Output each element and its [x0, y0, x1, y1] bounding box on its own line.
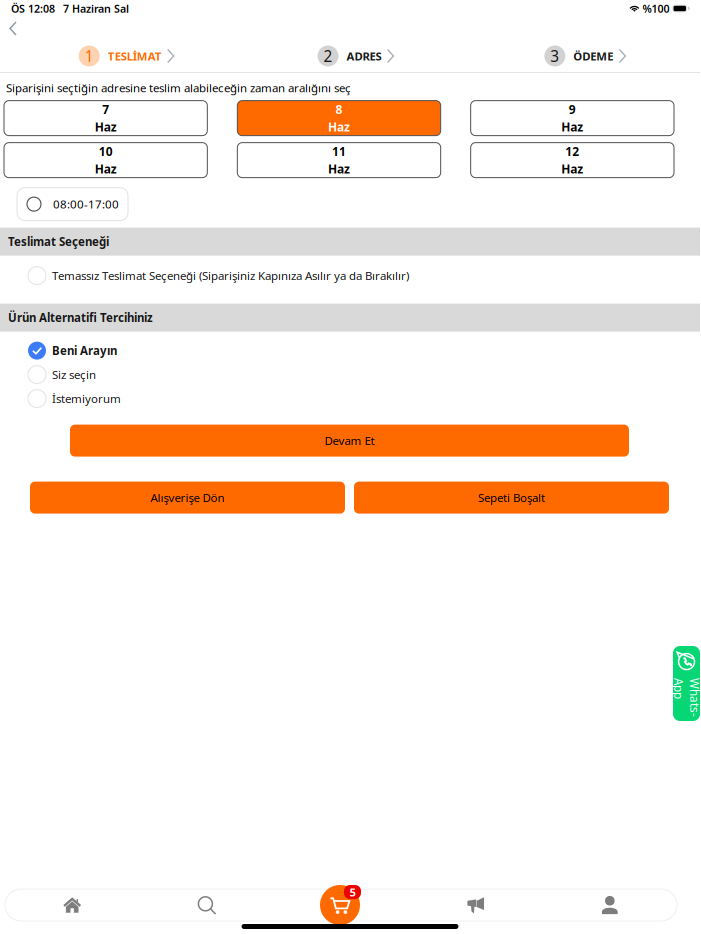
staticText: Temassız Teslimat Seçeneği (Siparişiniz …	[52, 268, 409, 283]
staticText: TESLİMAT	[108, 48, 162, 64]
button[interactable]: 7	[4, 101, 207, 136]
button[interactable]: Siz seçin	[0, 363, 700, 387]
staticText: İstemiyorum	[52, 391, 121, 406]
staticText: Haz	[328, 119, 350, 135]
staticText: ADRES	[346, 48, 381, 64]
button[interactable]: 8	[237, 101, 441, 136]
staticText: Haz	[561, 161, 583, 177]
staticText: 7	[102, 101, 109, 118]
button[interactable]: WhatsApp	[673, 646, 700, 721]
button[interactable]: 2	[317, 45, 394, 66]
staticText: 5	[349, 884, 355, 900]
button[interactable]: Home	[5, 889, 139, 921]
button[interactable]: Account	[543, 889, 677, 921]
staticText: 11	[332, 143, 346, 160]
button[interactable]: 1	[79, 45, 175, 66]
staticText: 2	[323, 46, 332, 66]
staticText: Alışverişe Dön	[150, 490, 224, 505]
button[interactable]: Beni Arayın	[0, 339, 700, 363]
staticText: Siz seçin	[52, 367, 96, 382]
staticText: Siparişini seçtiğin adresine teslim alab…	[6, 80, 351, 96]
staticText: 9	[569, 101, 576, 118]
button[interactable]: Sepeti Boşalt	[354, 482, 669, 514]
staticText: Haz	[95, 161, 117, 177]
button[interactable]: Search	[139, 889, 274, 921]
staticText: ÖDEME	[573, 48, 613, 64]
button[interactable]: 3	[544, 45, 626, 66]
staticText: Haz	[561, 119, 583, 135]
staticText: Haz	[95, 119, 117, 135]
button[interactable]: İstemiyorum	[0, 387, 700, 411]
staticText: 7 Haziran Sal	[63, 1, 129, 16]
button[interactable]: Campaigns	[408, 889, 543, 921]
button[interactable]: Alışverişe Dön	[30, 482, 345, 514]
staticText: Haz	[328, 161, 350, 177]
staticText: 8	[335, 101, 342, 118]
staticText: ÖS 12:08	[11, 1, 55, 16]
staticText: 08:00-17:00	[53, 196, 119, 212]
button[interactable]: 12	[471, 143, 674, 178]
staticText: 12	[565, 143, 579, 160]
button[interactable]: Back	[0, 19, 26, 38]
staticText: 1	[85, 46, 94, 66]
button[interactable]: Temassız Teslimat Seçeneği (Siparişiniz …	[0, 256, 700, 304]
staticText: 10	[99, 143, 113, 160]
button[interactable]: 10	[4, 143, 207, 178]
button[interactable]: Devam Et	[70, 425, 629, 457]
button[interactable]: 9	[471, 101, 674, 136]
staticText: 3	[550, 46, 559, 66]
staticText: Ürün Alternatifi Tercihiniz	[8, 310, 153, 325]
button[interactable]: 08:00-17:00	[17, 188, 128, 221]
button[interactable]: 11	[237, 143, 441, 178]
button[interactable]: Cart	[329, 885, 371, 925]
staticText: %100	[642, 1, 669, 16]
staticText: Teslimat Seçeneği	[8, 234, 109, 249]
staticText: Devam Et	[324, 433, 374, 448]
staticText: Beni Arayın	[52, 343, 117, 358]
staticText: WhatsApp	[667, 681, 701, 713]
staticText: Sepeti Boşalt	[478, 490, 545, 505]
